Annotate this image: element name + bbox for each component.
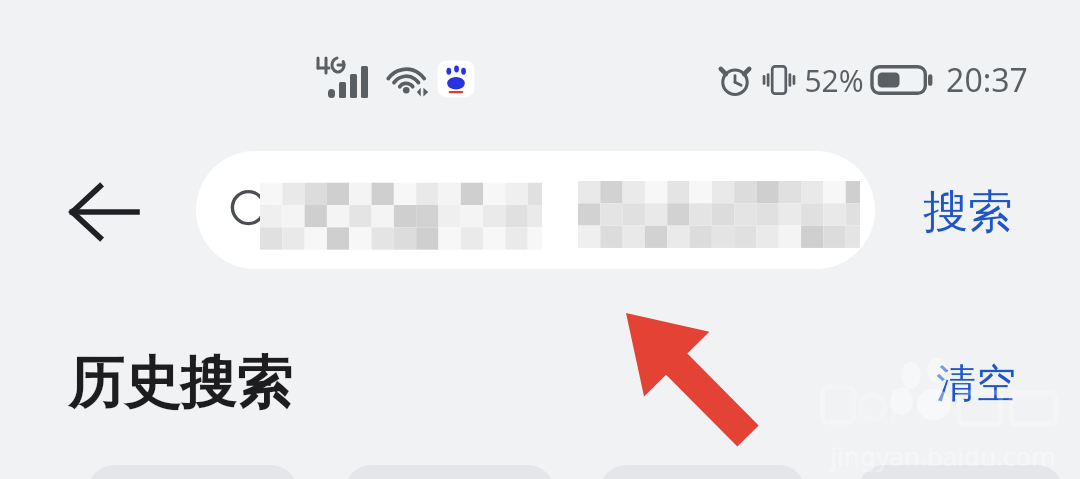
button[interactable] [196,151,875,269]
button[interactable] [858,465,1063,479]
button[interactable] [600,465,805,479]
staticText: 历史搜索 [68,348,292,419]
button[interactable]: 搜索 [900,166,1036,258]
staticText: 清空 [936,358,1016,408]
staticText: 搜索 [923,184,1013,241]
staticText: 20:37 [946,58,1028,102]
button[interactable]: Back [58,166,150,258]
button[interactable] [88,465,297,479]
button[interactable]: 历史搜索 [68,345,308,421]
staticText: 52% [804,60,864,101]
staticText: jingyan.baidu.com [830,438,1056,472]
button[interactable]: 清空 [924,350,1028,416]
button[interactable] [345,465,554,479]
